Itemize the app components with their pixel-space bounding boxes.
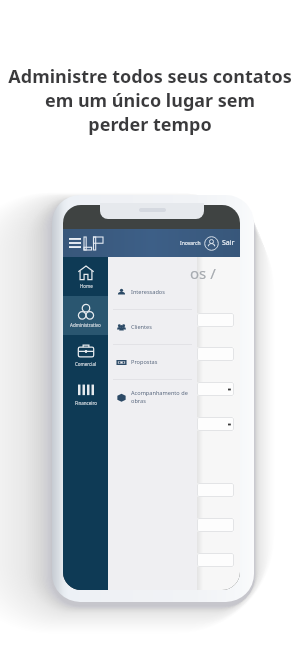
button[interactable]: [197, 313, 234, 327]
button[interactable]: [197, 518, 234, 532]
button[interactable]: Account: [204, 236, 219, 251]
staticText: Interessados: [131, 288, 165, 296]
staticText: os /: [190, 263, 216, 283]
staticText: Comercial: [75, 361, 97, 367]
button[interactable]: [197, 347, 234, 361]
button[interactable]: Home: [63, 257, 108, 296]
button[interactable]: Comercial: [63, 335, 108, 374]
button[interactable]: Acompanhamento de obras: [108, 380, 197, 414]
staticText: Inovarch: [180, 240, 201, 247]
button[interactable]: Clientes: [108, 310, 197, 344]
staticText: Propostas: [131, 358, 158, 366]
button[interactable]: [197, 417, 234, 431]
button[interactable]: Menu: [69, 238, 81, 248]
staticText: Administrativo: [70, 322, 101, 328]
staticText: Financeiro: [75, 400, 97, 406]
button[interactable]: [197, 483, 234, 497]
button[interactable]: Sair: [222, 238, 235, 248]
staticText: Administre todos seus contatos em um úni…: [0, 64, 300, 136]
button[interactable]: Financeiro: [63, 374, 108, 413]
button[interactable]: Propostas: [108, 345, 197, 379]
staticText: Acompanhamento de obras: [131, 389, 188, 405]
button[interactable]: [197, 382, 234, 396]
button[interactable]: [197, 553, 234, 567]
staticText: Clientes: [131, 323, 152, 331]
button[interactable]: Interessados: [108, 275, 197, 309]
staticText: Home: [80, 283, 93, 289]
button[interactable]: Administrativo: [63, 296, 108, 335]
